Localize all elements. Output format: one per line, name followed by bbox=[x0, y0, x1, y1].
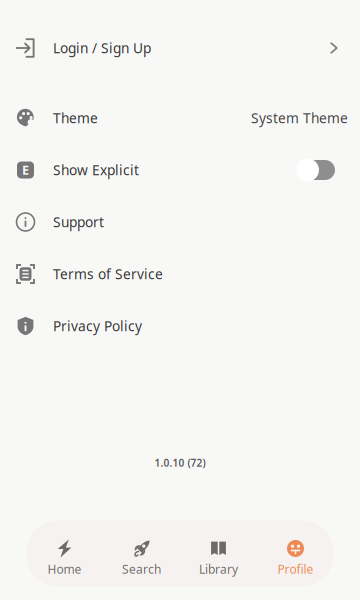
staticText: Library bbox=[199, 561, 238, 577]
button[interactable]: Home bbox=[26, 520, 103, 587]
button[interactable]: Search bbox=[103, 520, 180, 587]
staticText: Login / Sign Up bbox=[53, 39, 151, 57]
button[interactable]: Login / Sign Up bbox=[0, 22, 360, 74]
staticText: Privacy Policy bbox=[53, 317, 142, 335]
button[interactable]: Support bbox=[0, 196, 360, 248]
button[interactable]: Terms of Service bbox=[0, 248, 360, 300]
staticText: Theme bbox=[53, 109, 98, 127]
staticText: Home bbox=[47, 561, 81, 577]
staticText: Support bbox=[53, 213, 104, 231]
staticText: E bbox=[22, 161, 29, 179]
staticText: 1.0.10 (72) bbox=[154, 456, 205, 470]
staticText: System Theme bbox=[251, 109, 348, 127]
staticText: Profile bbox=[277, 561, 313, 577]
button[interactable]: Profile bbox=[257, 520, 334, 587]
button[interactable]: Theme bbox=[0, 92, 360, 144]
staticText: Terms of Service bbox=[53, 265, 163, 283]
staticText: Show Explicit bbox=[53, 161, 139, 179]
button[interactable]: E bbox=[0, 144, 360, 196]
button[interactable]: Library bbox=[180, 520, 257, 587]
button[interactable]: Privacy Policy bbox=[0, 300, 360, 352]
staticText: Search bbox=[122, 561, 161, 577]
